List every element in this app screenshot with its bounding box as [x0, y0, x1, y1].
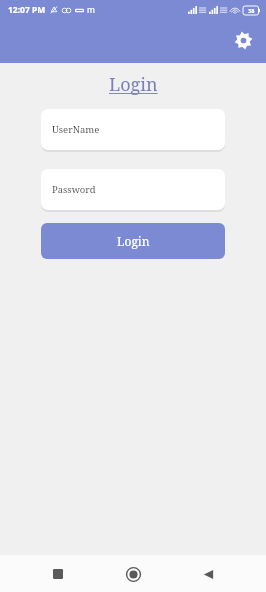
staticText: Login	[109, 72, 158, 97]
staticText: Login	[117, 233, 150, 249]
button[interactable]: UserName	[41, 109, 225, 150]
button[interactable]: Password	[41, 169, 225, 210]
staticText: Password	[52, 183, 96, 196]
button[interactable]: Login	[41, 223, 225, 259]
staticText: m	[87, 4, 95, 16]
staticText: UserName	[52, 123, 100, 136]
button[interactable]: Settings	[228, 25, 258, 55]
staticText: 38	[248, 7, 255, 14]
button[interactable]: Home	[116, 557, 150, 591]
button[interactable]: Login	[103, 70, 164, 99]
staticText: 12:07 PM	[8, 4, 46, 16]
button[interactable]: Back	[191, 557, 225, 591]
button[interactable]: Recent apps	[41, 557, 75, 591]
